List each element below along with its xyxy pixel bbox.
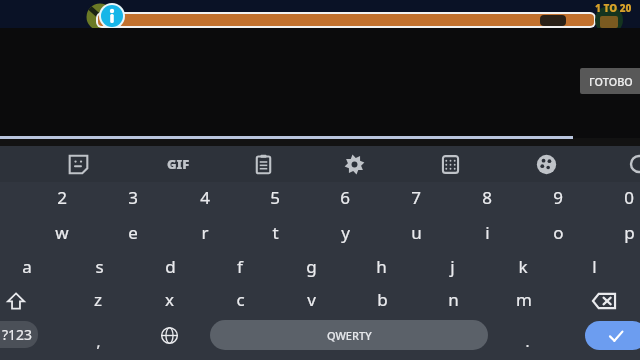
button[interactable]: g bbox=[278, 250, 344, 283]
button[interactable]: Enter bbox=[585, 321, 640, 350]
staticText: 0 bbox=[624, 186, 634, 209]
staticText: 2 bbox=[57, 186, 67, 209]
button[interactable]: , bbox=[65, 324, 131, 357]
button[interactable]: 7 bbox=[383, 181, 449, 214]
button[interactable]: b bbox=[349, 283, 415, 316]
button[interactable]: 4 bbox=[172, 181, 238, 214]
button[interactable]: Keyboard tool bbox=[60, 146, 96, 182]
button[interactable]: Shift bbox=[0, 285, 46, 317]
staticText: . bbox=[525, 331, 530, 351]
button[interactable]: Keyboard tool bbox=[336, 146, 372, 182]
staticText: k bbox=[518, 255, 528, 278]
button[interactable]: ?123 bbox=[0, 321, 38, 348]
button[interactable]: r bbox=[172, 216, 238, 249]
staticText: , bbox=[96, 331, 101, 351]
button[interactable]: m bbox=[491, 283, 557, 316]
staticText: f bbox=[237, 255, 243, 278]
staticText: p bbox=[624, 221, 635, 244]
button[interactable]: h bbox=[348, 250, 414, 283]
button[interactable]: QWERTY bbox=[210, 320, 488, 350]
staticText: 3 bbox=[128, 186, 138, 209]
staticText: e bbox=[128, 221, 138, 244]
button[interactable]: Keyboard tool bbox=[528, 146, 564, 182]
button[interactable]: 3 bbox=[100, 181, 166, 214]
button[interactable]: o bbox=[525, 216, 591, 249]
button[interactable]: c bbox=[207, 283, 273, 316]
button[interactable]: j bbox=[419, 250, 485, 283]
staticText: 4 bbox=[200, 186, 210, 209]
button[interactable]: k bbox=[490, 250, 556, 283]
button[interactable]: 0 bbox=[596, 181, 640, 214]
button[interactable]: x bbox=[136, 283, 202, 316]
staticText: i bbox=[485, 221, 490, 244]
button[interactable]: Change language bbox=[149, 321, 189, 349]
staticText: d bbox=[165, 255, 176, 278]
staticText: m bbox=[516, 288, 532, 311]
button[interactable]: z bbox=[65, 283, 131, 316]
button[interactable]: n bbox=[420, 283, 486, 316]
button[interactable]: 2 bbox=[29, 181, 95, 214]
button[interactable]: y bbox=[312, 216, 378, 249]
button[interactable]: d bbox=[137, 250, 203, 283]
staticText: a bbox=[22, 255, 32, 278]
staticText: 9 bbox=[553, 186, 563, 209]
staticText: t bbox=[272, 221, 279, 244]
staticText: h bbox=[376, 255, 387, 278]
button[interactable]: t bbox=[242, 216, 308, 249]
staticText: g bbox=[306, 255, 317, 278]
button[interactable]: 5 bbox=[242, 181, 308, 214]
button[interactable]: l bbox=[561, 250, 627, 283]
staticText: s bbox=[95, 255, 104, 278]
staticText: 1 TO 20 bbox=[595, 1, 632, 15]
button[interactable]: i bbox=[454, 216, 520, 249]
button[interactable]: More bbox=[630, 155, 640, 173]
staticText: 5 bbox=[270, 186, 280, 209]
button[interactable]: e bbox=[100, 216, 166, 249]
staticText: ?123 bbox=[2, 325, 33, 344]
staticText: n bbox=[448, 288, 459, 311]
button[interactable]: a bbox=[0, 250, 60, 283]
staticText: r bbox=[201, 221, 209, 244]
button[interactable]: Backspace bbox=[578, 285, 630, 317]
button[interactable]: s bbox=[66, 250, 132, 283]
staticText: 8 bbox=[482, 186, 492, 209]
button[interactable]: . bbox=[494, 324, 560, 357]
staticText: QWERTY bbox=[327, 328, 372, 343]
button[interactable]: Keyboard tool bbox=[245, 146, 281, 182]
button[interactable]: GIF bbox=[153, 146, 203, 182]
staticText: w bbox=[55, 221, 69, 244]
staticText: GIF bbox=[167, 155, 190, 173]
staticText: o bbox=[553, 221, 564, 244]
button[interactable]: u bbox=[383, 216, 449, 249]
staticText: y bbox=[341, 221, 350, 244]
staticText: u bbox=[411, 221, 422, 244]
staticText: b bbox=[377, 288, 388, 311]
staticText: c bbox=[236, 288, 245, 311]
staticText: j bbox=[450, 255, 455, 278]
staticText: x bbox=[165, 288, 174, 311]
button[interactable]: Keyboard tool bbox=[432, 146, 468, 182]
button[interactable]: 6 bbox=[312, 181, 378, 214]
button[interactable]: p bbox=[596, 216, 640, 249]
staticText: 7 bbox=[411, 186, 421, 209]
button[interactable]: ГОТОВО bbox=[580, 68, 640, 94]
button[interactable]: f bbox=[207, 250, 273, 283]
staticText: v bbox=[307, 288, 316, 311]
button[interactable]: w bbox=[29, 216, 95, 249]
staticText: l bbox=[592, 255, 597, 278]
button[interactable]: v bbox=[278, 283, 344, 316]
staticText: ГОТОВО bbox=[589, 74, 633, 89]
button[interactable]: 9 bbox=[525, 181, 591, 214]
button[interactable]: 8 bbox=[454, 181, 520, 214]
staticText: z bbox=[94, 288, 102, 311]
staticText: 6 bbox=[340, 186, 350, 209]
